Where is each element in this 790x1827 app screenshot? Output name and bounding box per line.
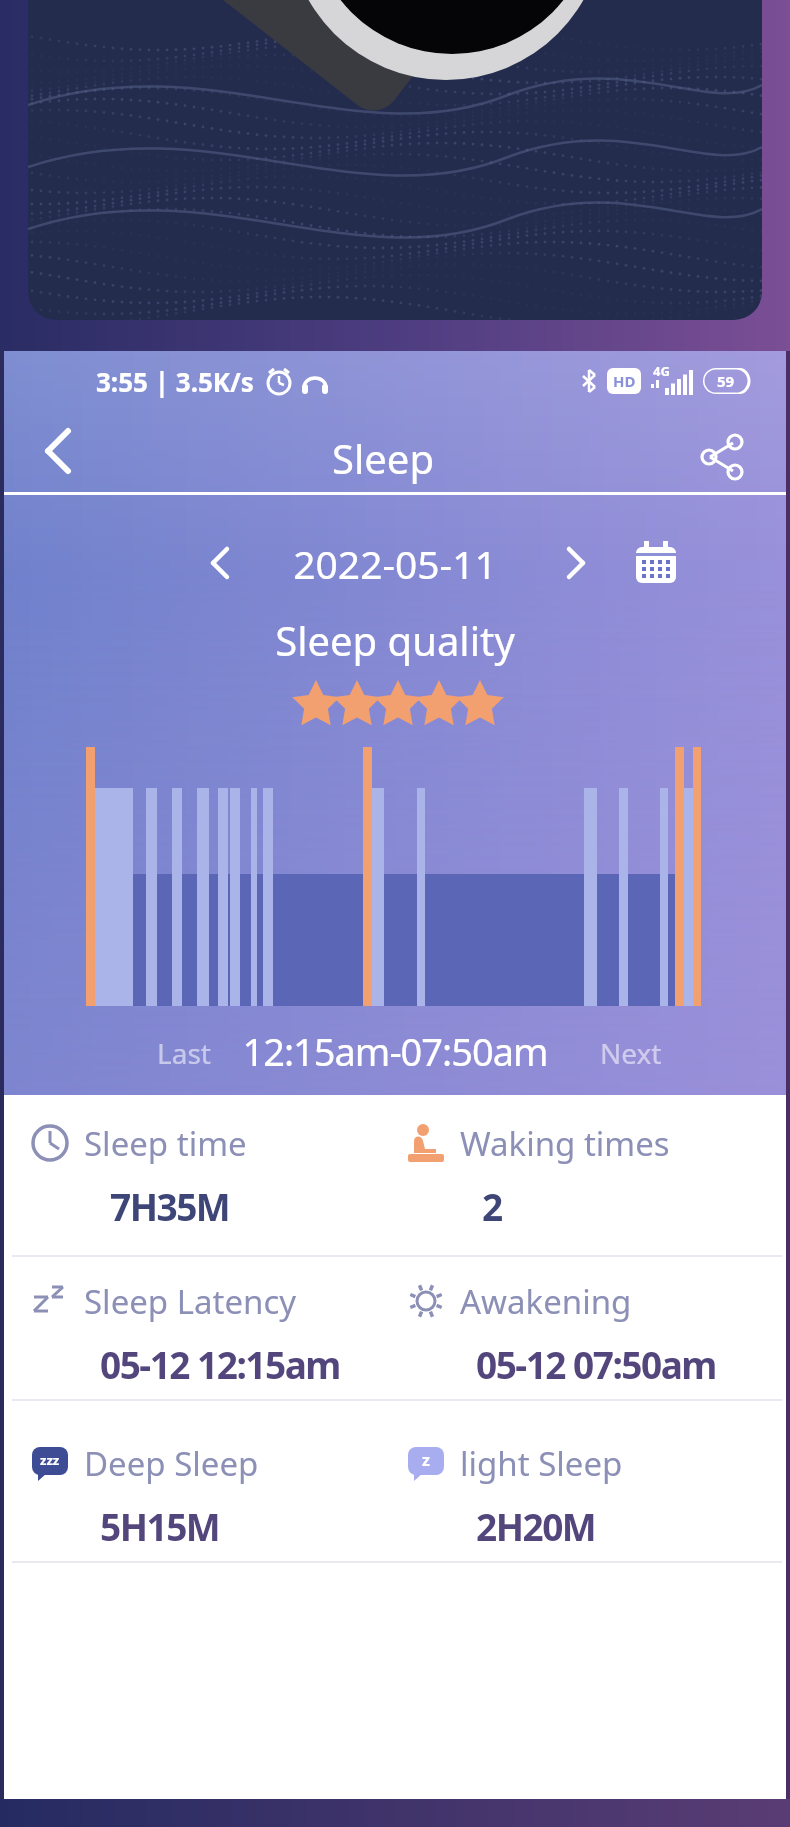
button[interactable] — [694, 429, 750, 485]
button[interactable]: Waking times — [406, 1121, 766, 1241]
staticText: zzz — [40, 1451, 60, 1469]
staticText: 4G — [653, 362, 670, 380]
staticText: 05-12 07:50am — [476, 1339, 716, 1389]
button[interactable] — [200, 541, 240, 585]
staticText: Sleep time — [84, 1121, 247, 1165]
staticText: 59 — [717, 371, 735, 391]
staticText: 05-12 12:15am — [100, 1339, 340, 1389]
staticText: 3:55 | 3.5K/s — [96, 364, 254, 399]
staticText: 7H35M — [110, 1181, 230, 1231]
staticText: 5H15M — [100, 1501, 220, 1551]
staticText: 2 — [482, 1181, 502, 1231]
staticText: Sleep quality — [4, 613, 786, 667]
button[interactable]: Last — [157, 1034, 211, 1072]
staticText: 2022-05-11 — [4, 537, 786, 590]
staticText: Awakening — [460, 1279, 632, 1323]
staticText: z — [422, 1449, 430, 1471]
staticText: Sleep Latency — [84, 1279, 297, 1323]
staticText: HD — [613, 371, 636, 391]
staticText: 12:15am-07:50am — [4, 1025, 786, 1077]
button[interactable]: zzz — [30, 1441, 390, 1561]
button[interactable] — [556, 541, 596, 585]
button[interactable] — [630, 537, 682, 589]
button[interactable]: Sleep Latency — [30, 1279, 390, 1399]
button[interactable]: z — [406, 1441, 766, 1561]
button[interactable]: Next — [600, 1034, 662, 1072]
button[interactable] — [34, 421, 84, 481]
button[interactable]: Sleep time — [30, 1121, 390, 1241]
staticText: Deep Sleep — [84, 1441, 259, 1485]
button[interactable]: Awakening — [406, 1279, 766, 1399]
staticText: Waking times — [460, 1121, 670, 1165]
staticText: Sleep — [0, 431, 774, 485]
staticText: 2H20M — [476, 1501, 596, 1551]
staticText: light Sleep — [460, 1441, 623, 1485]
